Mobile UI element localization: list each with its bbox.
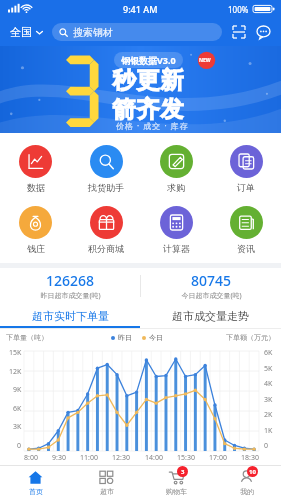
staticText: 下单额（万元） — [226, 333, 275, 342]
staticText: 126268 — [46, 271, 95, 290]
button[interactable]: 超市成交量走势 — [140, 304, 281, 328]
staticText: 0 — [264, 441, 269, 451]
button[interactable]: 积分商城 — [71, 204, 141, 256]
staticText: 全国 — [10, 25, 32, 39]
staticText: NEW — [199, 57, 211, 64]
staticText: 11:00 — [80, 453, 98, 463]
staticText: 4K — [264, 379, 273, 389]
staticText: 箭齐发 — [112, 95, 184, 124]
staticText: 我的 — [240, 487, 254, 496]
staticText: 9:41 AM — [123, 3, 158, 15]
staticText: 9K — [13, 385, 22, 395]
staticText: 9:30 — [52, 453, 66, 463]
button[interactable]: 80745 — [141, 269, 281, 303]
button[interactable]: Scan — [229, 22, 249, 42]
staticText: 昨日超市成交量(吨) — [40, 291, 101, 301]
staticText: 6K — [264, 348, 273, 358]
staticText: 6K — [13, 404, 22, 414]
button[interactable]: 资讯 — [211, 204, 281, 256]
staticText: 超市成交量走势 — [172, 309, 249, 323]
staticText: 17:00 — [209, 453, 227, 463]
staticText: 5K — [264, 364, 273, 374]
staticText: 积分商城 — [88, 243, 124, 254]
staticText: 15:30 — [177, 453, 195, 463]
button[interactable]: 订单 — [211, 143, 281, 195]
staticText: 钱庄 — [27, 243, 45, 254]
staticText: 14:00 — [145, 453, 163, 463]
staticText: 今日 — [149, 333, 163, 342]
staticText: 资讯 — [237, 243, 255, 254]
button[interactable]: 找货助手 — [71, 143, 141, 195]
button[interactable]: 超市 — [71, 466, 141, 500]
staticText: 下单量（吨） — [6, 333, 48, 342]
staticText: 2K — [264, 410, 273, 420]
staticText: 购物车 — [166, 487, 187, 496]
staticText: 3 — [181, 468, 185, 476]
staticText: 数据 — [27, 182, 45, 193]
staticText: 18:30 — [241, 453, 259, 463]
button[interactable]: 10 — [211, 466, 281, 500]
staticText: 15K — [9, 348, 22, 358]
button[interactable]: 3 — [141, 466, 211, 500]
staticText: 1K — [264, 426, 273, 436]
staticText: 超市实时下单量 — [32, 309, 109, 323]
staticText: 超市 — [100, 487, 114, 496]
staticText: 价格 · 成交 · 库存 — [116, 120, 189, 131]
button[interactable]: 搜索钢材 — [52, 23, 222, 41]
staticText: 8:00 — [24, 453, 38, 463]
staticText: 0 — [17, 441, 22, 451]
button[interactable]: Messages — [253, 22, 273, 42]
button[interactable]: 超市实时下单量 — [0, 304, 140, 328]
staticText: 100% — [228, 4, 249, 15]
staticText: 订单 — [237, 182, 255, 193]
staticText: 12K — [9, 367, 22, 377]
staticText: 12:30 — [112, 453, 130, 463]
staticText: 80745 — [191, 271, 232, 290]
staticText: 钢银数据V3.0 — [121, 54, 176, 66]
button[interactable]: 数据 — [0, 143, 71, 195]
staticText: 3K — [13, 422, 22, 432]
staticText: 秒更新 — [112, 66, 184, 95]
button[interactable]: 计算器 — [141, 204, 211, 256]
staticText: 搜索钢材 — [73, 26, 113, 39]
staticText: 昨日 — [118, 333, 132, 342]
staticText: 求购 — [167, 182, 185, 193]
staticText: 找货助手 — [88, 182, 124, 193]
button[interactable]: 求购 — [141, 143, 211, 195]
staticText: 3K — [264, 395, 273, 405]
staticText: 10 — [249, 468, 256, 476]
button[interactable]: 首页 — [0, 466, 71, 500]
staticText: 今日超市成交量(吨) — [181, 291, 242, 301]
staticText: 计算器 — [163, 243, 190, 254]
button[interactable]: 全国 — [8, 21, 46, 43]
button[interactable]: 126268 — [0, 269, 140, 303]
staticText: 首页 — [29, 487, 43, 496]
button[interactable]: 钱庄 — [0, 204, 71, 256]
